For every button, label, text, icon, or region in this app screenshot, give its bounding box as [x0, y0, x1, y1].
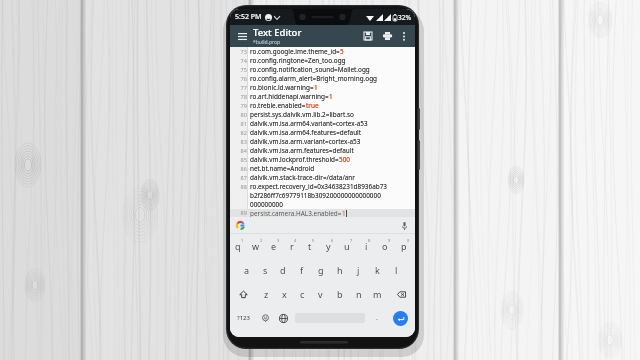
button[interactable]: 82 — [230, 128, 415, 137]
button[interactable]: Shift — [230, 282, 257, 306]
button[interactable]: x — [275, 282, 293, 306]
staticText: 73 — [240, 48, 247, 56]
button[interactable]: 88 — [230, 182, 415, 191]
staticText: 000000000 — [250, 200, 283, 209]
button[interactable]: 74 — [230, 56, 415, 65]
button[interactable]: w — [248, 234, 266, 258]
staticText: persist.camera.HAL3.enabled= — [250, 209, 342, 217]
button[interactable]: 78 — [230, 92, 415, 101]
button[interactable]: 73 — [230, 47, 415, 56]
button[interactable]: More options — [397, 29, 411, 43]
button[interactable]: 79 — [230, 101, 415, 110]
button[interactable]: 86 — [230, 164, 415, 173]
staticText: 9 — [388, 238, 391, 243]
staticText: n — [356, 288, 362, 300]
button[interactable]: 89 — [230, 209, 415, 217]
button[interactable]: 87 — [230, 173, 415, 182]
button[interactable]: y — [320, 234, 339, 258]
button[interactable]: ?123 — [230, 306, 256, 330]
button[interactable]: Save — [360, 28, 376, 44]
button[interactable]: b2f286ff7c69779118b309200000000000000 — [230, 191, 415, 200]
button[interactable]: Emoji — [256, 306, 274, 330]
button[interactable]: 85 — [230, 155, 415, 164]
button[interactable]: 89 — [230, 209, 415, 217]
button[interactable]: 75 — [230, 65, 415, 74]
button[interactable]: 86 — [230, 164, 415, 173]
staticText: b2f286ff7c69779118b309200000000000000 — [250, 191, 381, 200]
button[interactable]: 82 — [230, 128, 415, 137]
button[interactable]: 73 — [230, 47, 415, 56]
button[interactable]: Open navigation menu — [234, 28, 250, 44]
button[interactable]: 000000000 — [230, 200, 415, 209]
button[interactable]: i — [358, 234, 377, 258]
staticText: v — [318, 288, 323, 300]
staticText: 1 — [342, 209, 346, 217]
button[interactable]: t — [302, 234, 320, 258]
staticText: 82 — [240, 129, 247, 137]
staticText: 1 — [314, 83, 318, 92]
button[interactable]: 84 — [230, 146, 415, 155]
button[interactable]: Voice input — [400, 221, 409, 230]
button[interactable]: r — [284, 234, 302, 258]
button[interactable]: 88 — [230, 182, 415, 191]
staticText: 5:52 PM — [235, 12, 262, 22]
button[interactable]: 76 — [230, 74, 415, 83]
button[interactable]: k — [368, 258, 387, 282]
button[interactable]: q — [230, 234, 248, 258]
button[interactable]: 83 — [230, 137, 415, 146]
button[interactable]: s — [256, 258, 274, 282]
button[interactable]: j — [349, 258, 368, 282]
button[interactable]: z — [257, 282, 275, 306]
button[interactable]: 84 — [230, 146, 415, 155]
button[interactable]: h — [330, 258, 349, 282]
button[interactable]: g — [311, 258, 330, 282]
button[interactable]: 76 — [230, 74, 415, 83]
staticText: 84 — [240, 147, 247, 155]
button[interactable]: n — [349, 282, 368, 306]
button[interactable]: p — [396, 234, 415, 258]
button[interactable]: 79 — [230, 101, 415, 110]
button[interactable]: b — [330, 282, 349, 306]
button[interactable]: 80 — [230, 110, 415, 119]
button[interactable]: . — [368, 306, 386, 330]
button[interactable]: e — [266, 234, 284, 258]
staticText: t — [308, 240, 312, 252]
button[interactable]: 78 — [230, 92, 415, 101]
button[interactable]: 000000000 — [230, 200, 415, 209]
staticText: 81 — [240, 120, 247, 128]
button[interactable]: 75 — [230, 65, 415, 74]
button[interactable]: Print — [379, 28, 395, 44]
button[interactable]: d — [274, 258, 292, 282]
button[interactable]: 77 — [230, 83, 415, 92]
staticText: 5 — [312, 238, 315, 243]
button[interactable]: 77 — [230, 83, 415, 92]
button[interactable]: Backspace — [387, 282, 415, 306]
button[interactable]: l — [387, 258, 406, 282]
button[interactable]: Google search — [236, 221, 245, 230]
staticText: ro.config.alarm_alert=Bright_morning.ogg — [250, 74, 378, 83]
button[interactable]: 81 — [230, 119, 415, 128]
button[interactable]: Change language — [274, 306, 292, 330]
button[interactable]: o — [377, 234, 396, 258]
button[interactable]: 80 — [230, 110, 415, 119]
staticText: 88 — [240, 183, 247, 191]
button[interactable]: 87 — [230, 173, 415, 182]
staticText: 1 — [314, 83, 318, 92]
button[interactable]: v — [311, 282, 330, 306]
staticText: 75 — [240, 66, 247, 74]
staticText: 88 — [240, 183, 247, 191]
button[interactable]: b2f286ff7c69779118b309200000000000000 — [230, 191, 415, 200]
staticText: 5 — [340, 47, 344, 56]
button[interactable]: m — [368, 282, 387, 306]
button[interactable]: Enter — [393, 311, 408, 326]
button[interactable]: 85 — [230, 155, 415, 164]
button[interactable]: 81 — [230, 119, 415, 128]
button[interactable]: f — [292, 258, 311, 282]
button[interactable]: u — [339, 234, 358, 258]
button[interactable]: 74 — [230, 56, 415, 65]
staticText: 85 — [240, 156, 247, 164]
button[interactable]: c — [293, 282, 311, 306]
button[interactable]: 83 — [230, 137, 415, 146]
button[interactable]: a — [238, 258, 256, 282]
